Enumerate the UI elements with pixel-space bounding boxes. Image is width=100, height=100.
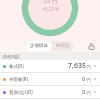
button[interactable]: 外国株(R) [0,73,100,85]
button[interactable]: Lock [86,41,96,51]
staticText: +0.27 % [42,6,59,12]
button[interactable]: 株式(R) [0,60,100,72]
button[interactable]: 評価損益 [26,41,52,51]
staticText: 外国株(R) [9,76,28,82]
staticText: 円 [87,77,91,82]
staticText: 0 [82,75,86,83]
staticText: 0 [82,88,86,96]
button[interactable]: 投資信託(R) [0,86,100,98]
staticText: 投資信託(R) [9,89,33,95]
staticText: 前日比 [56,43,70,49]
staticText: 株式(R) [9,63,24,69]
staticText: 7,635 [68,61,86,71]
staticText: 円 [87,64,91,69]
staticText: 評価損益 [30,43,48,49]
staticText: 23 円 [43,0,58,5]
button[interactable]: 前日比 [52,41,74,51]
staticText: 資産内訳 [3,54,20,59]
staticText: 円 [87,90,91,95]
